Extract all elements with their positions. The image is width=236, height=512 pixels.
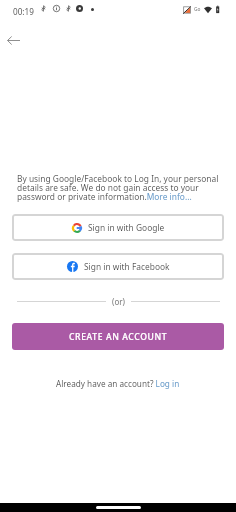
- staticText: (or): [112, 296, 125, 307]
- button[interactable]: CREATE AN ACCOUNT: [12, 323, 224, 350]
- staticText: Sign in with Facebook: [84, 261, 170, 272]
- button[interactable]: Already have an account? Log in: [56, 378, 180, 389]
- button[interactable]: Sign in with Facebook: [12, 253, 224, 280]
- staticText: Go: [194, 6, 201, 13]
- staticText: 00:19: [13, 6, 34, 17]
- staticText: CREATE AN ACCOUNT: [69, 331, 168, 343]
- button[interactable]: Back: [1, 28, 25, 52]
- staticText: By using Google/Facebook to Log In, your…: [17, 173, 220, 203]
- button[interactable]: Sign in with Google: [12, 214, 224, 241]
- staticText: Sign in with Google: [88, 222, 165, 233]
- staticText: Already have an account? Log in: [56, 378, 180, 389]
